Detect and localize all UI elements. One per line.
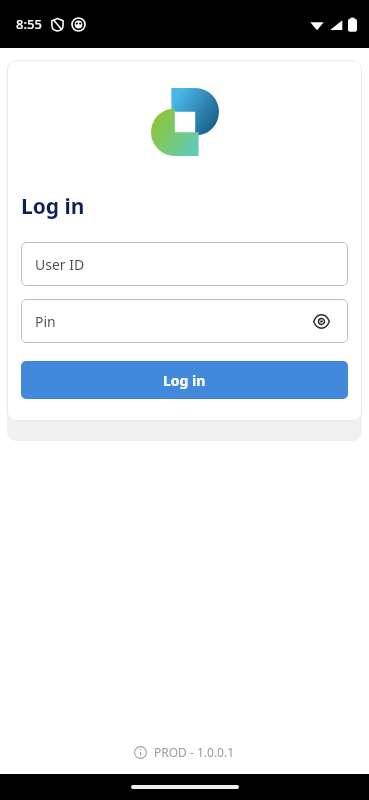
staticText: Log in [163, 371, 206, 390]
staticText: Pin [35, 312, 56, 331]
button[interactable]: PROD - 1.0.0.1 [134, 744, 235, 760]
button[interactable]: Show pin [308, 308, 334, 334]
button[interactable]: Pin [21, 299, 348, 343]
button[interactable]: Log in [21, 361, 348, 399]
staticText: User ID [35, 255, 85, 274]
staticText: Log in [21, 192, 85, 221]
staticText: 8:55 [16, 15, 42, 33]
staticText: PROD - 1.0.0.1 [154, 744, 235, 760]
button[interactable]: User ID [21, 242, 348, 286]
